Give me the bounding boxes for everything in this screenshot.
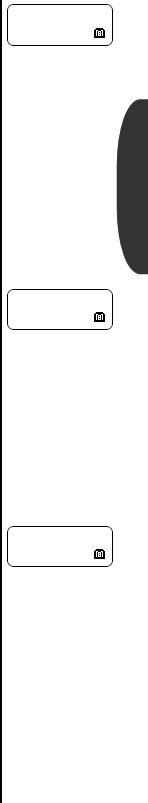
button[interactable]: Call: [7, 289, 113, 330]
button[interactable]: Call: [7, 526, 113, 567]
button[interactable]: Call: [7, 4, 113, 46]
